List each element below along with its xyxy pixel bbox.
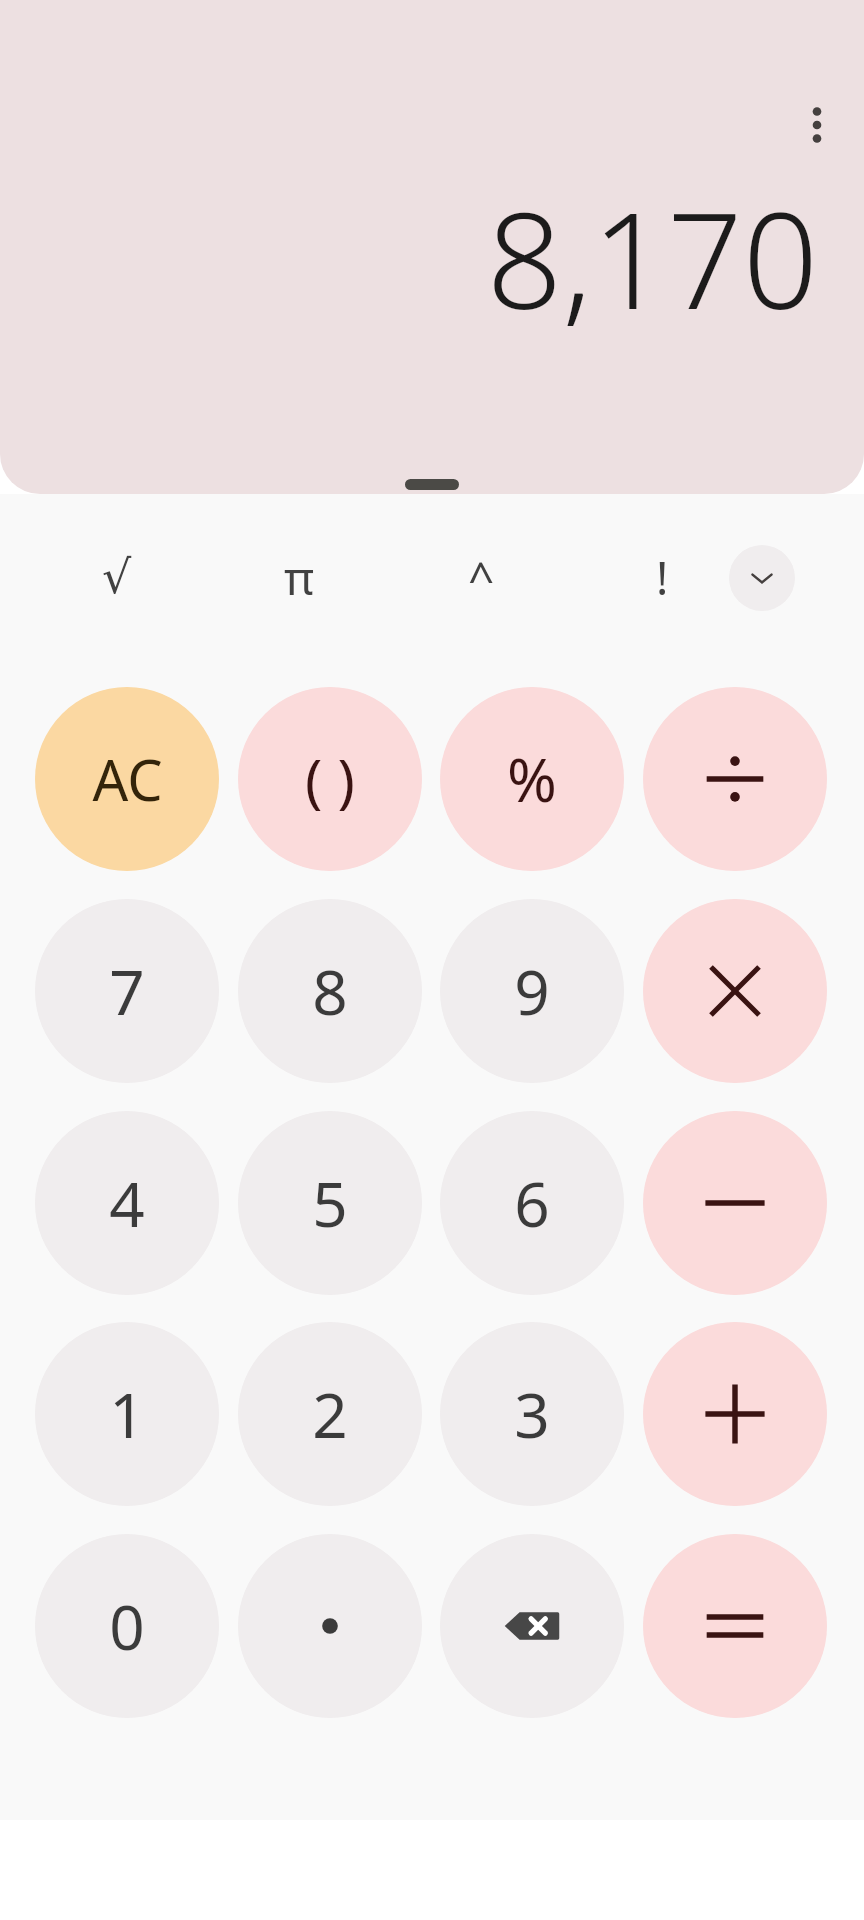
button[interactable]: 2 xyxy=(238,1322,422,1506)
staticText: ^ xyxy=(468,546,495,609)
staticText: 3 xyxy=(514,1372,550,1456)
button[interactable]: Show more functions xyxy=(729,545,795,611)
staticText: 1 xyxy=(109,1372,145,1456)
button[interactable]: More options xyxy=(777,85,857,165)
button[interactable]: ( ) xyxy=(238,687,422,871)
button[interactable]: π xyxy=(229,544,369,610)
staticText: ! xyxy=(656,546,669,609)
button[interactable]: 0 xyxy=(35,1534,219,1718)
button[interactable]: √ xyxy=(47,544,187,610)
button[interactable]: 7 xyxy=(35,899,219,1083)
button[interactable]: 6 xyxy=(440,1111,624,1295)
staticText: 2 xyxy=(312,1372,348,1456)
staticText: 0 xyxy=(109,1584,145,1668)
button[interactable]: Multiply xyxy=(643,899,827,1083)
staticText: 4 xyxy=(109,1161,145,1245)
button[interactable]: % xyxy=(440,687,624,871)
staticText: 9 xyxy=(514,949,550,1033)
staticText: √ xyxy=(102,550,132,604)
button[interactable]: 9 xyxy=(440,899,624,1083)
staticText: 7 xyxy=(109,949,145,1033)
button[interactable]: Plus xyxy=(643,1322,827,1506)
button[interactable]: AC xyxy=(35,687,219,871)
staticText: 5 xyxy=(312,1161,348,1245)
button[interactable]: Divide xyxy=(643,687,827,871)
button[interactable]: 4 xyxy=(35,1111,219,1295)
button[interactable]: 8 xyxy=(238,899,422,1083)
staticText: AC xyxy=(92,741,163,817)
button[interactable]: 5 xyxy=(238,1111,422,1295)
button[interactable]: ^ xyxy=(411,544,551,610)
staticText: π xyxy=(284,546,315,609)
staticText: 6 xyxy=(514,1161,550,1245)
staticText: % xyxy=(507,738,557,820)
staticText: ( ) xyxy=(305,740,355,819)
button[interactable]: ! xyxy=(592,544,732,610)
button[interactable]: 1 xyxy=(35,1322,219,1506)
button[interactable]: Minus xyxy=(643,1111,827,1295)
button[interactable]: Equals xyxy=(643,1534,827,1718)
button[interactable]: 3 xyxy=(440,1322,624,1506)
staticText: 8,170 xyxy=(486,168,818,348)
button[interactable]: Decimal point xyxy=(238,1534,422,1718)
staticText: 8 xyxy=(312,949,348,1033)
button[interactable]: Backspace xyxy=(440,1534,624,1718)
